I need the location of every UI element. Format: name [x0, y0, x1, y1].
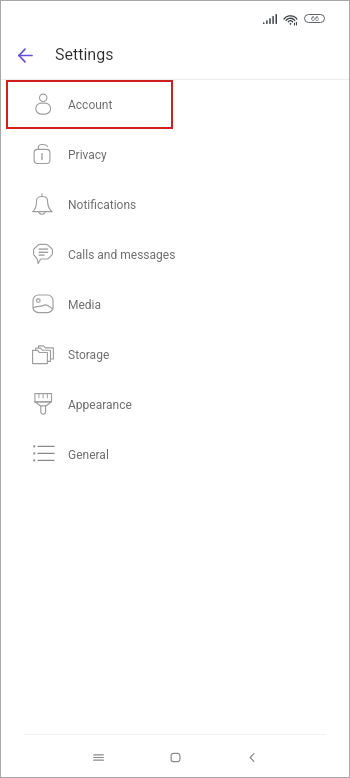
button[interactable]: Privacy	[0, 130, 350, 180]
button[interactable]: Appearance	[0, 380, 350, 430]
staticText: Notifications	[68, 198, 137, 212]
button[interactable]: General	[0, 430, 350, 480]
button[interactable]: Back	[234, 735, 270, 778]
staticText: Media	[68, 298, 102, 312]
button[interactable]: Media	[0, 280, 350, 330]
staticText: Storage	[68, 348, 110, 362]
staticText: Appearance	[68, 398, 132, 412]
staticText: Account	[68, 98, 113, 112]
button[interactable]: Storage	[0, 330, 350, 380]
button[interactable]: Account	[0, 80, 350, 130]
button[interactable]: Home	[157, 735, 193, 778]
button[interactable]: Notifications	[0, 180, 350, 230]
staticText: Settings	[55, 45, 114, 64]
button[interactable]: Back	[9, 39, 41, 71]
staticText: Calls and messages	[68, 248, 176, 262]
staticText: Privacy	[68, 148, 107, 162]
staticText: 66	[311, 15, 319, 23]
staticText: General	[68, 448, 109, 462]
button[interactable]: Recent apps	[80, 735, 116, 778]
button[interactable]: Calls and messages	[0, 230, 350, 280]
